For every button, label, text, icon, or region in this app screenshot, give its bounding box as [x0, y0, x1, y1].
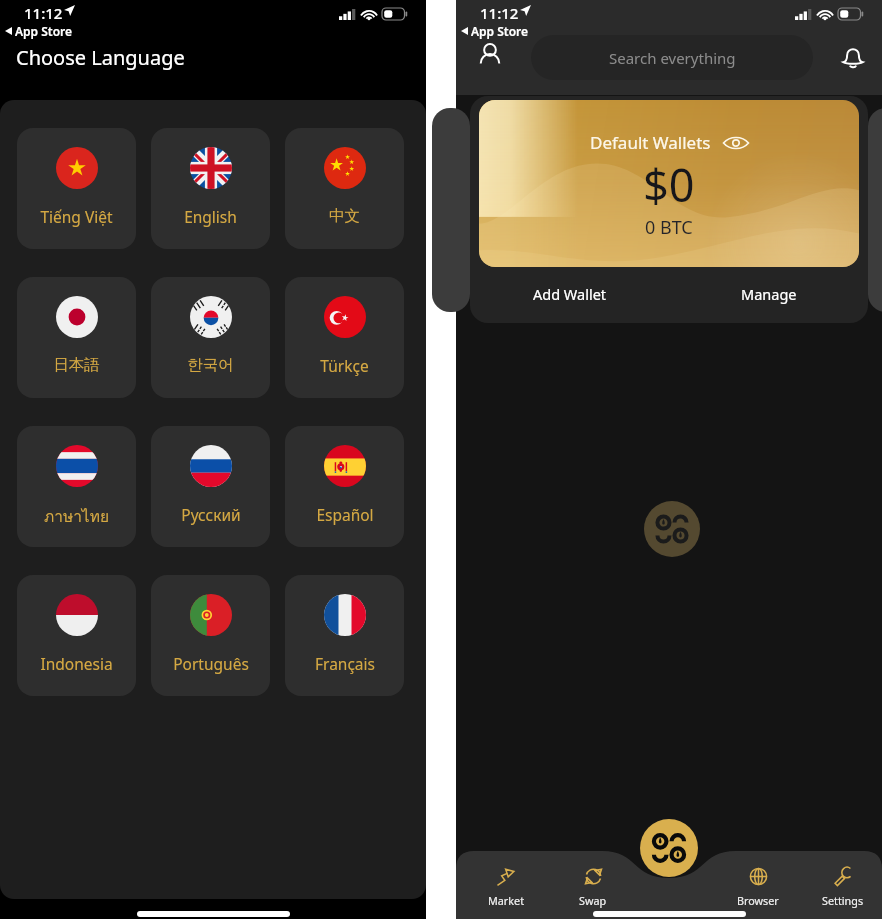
staticText: Choose Language	[16, 44, 185, 71]
staticText: Browser	[737, 893, 779, 908]
staticText: Add Wallet	[533, 284, 607, 304]
button[interactable]: Indonesia	[17, 575, 136, 696]
button[interactable]: Add Wallet	[470, 268, 669, 320]
button[interactable]: Swap	[555, 860, 631, 910]
staticText: Tiếng Việt	[40, 206, 113, 227]
staticText: Settings	[822, 893, 864, 908]
button[interactable]: Русский	[151, 426, 270, 547]
staticText: Português	[173, 653, 249, 674]
button[interactable]: Español	[285, 426, 404, 547]
staticText: Русский	[181, 504, 241, 525]
button[interactable]: Search everything	[531, 35, 813, 80]
staticText: 한국어	[187, 355, 234, 375]
staticText: ภาษาไทย	[44, 504, 109, 529]
staticText: Manage	[741, 284, 797, 304]
staticText: 11:12	[24, 3, 63, 23]
button[interactable]: Manage	[669, 268, 868, 320]
staticText: Español	[316, 504, 374, 525]
staticText: 11:12	[480, 3, 519, 23]
staticText: 日本語	[53, 355, 100, 375]
staticText: App Store	[15, 23, 73, 39]
button[interactable]: 한국어	[151, 277, 270, 398]
staticText: Swap	[579, 893, 607, 908]
button[interactable]: Türkçe	[285, 277, 404, 398]
staticText: Français	[315, 653, 375, 674]
staticText: Search everything	[609, 48, 736, 68]
staticText: 0 BTC	[645, 215, 693, 240]
staticText: Indonesia	[40, 653, 113, 674]
button[interactable]: Português	[151, 575, 270, 696]
button[interactable]: English	[151, 128, 270, 249]
button[interactable]: Market	[468, 860, 544, 910]
staticText: Market	[488, 893, 525, 908]
staticText: 中文	[329, 206, 360, 226]
other: Toggle balance	[723, 135, 749, 151]
button[interactable]: Settings	[805, 860, 881, 910]
button[interactable]: ภาษาไทย	[17, 426, 136, 547]
button[interactable]: Notifications	[839, 42, 867, 70]
staticText: Default Wallets	[590, 131, 711, 154]
button[interactable]: Français	[285, 575, 404, 696]
button[interactable]: Browser	[720, 860, 796, 910]
button[interactable]: 中文	[285, 128, 404, 249]
staticText: $0	[643, 154, 695, 215]
staticText: English	[184, 206, 237, 227]
button[interactable]: 日本語	[17, 277, 136, 398]
staticText: App Store	[471, 23, 529, 39]
staticText: Türkçe	[320, 355, 369, 376]
button[interactable]: Tiếng Việt	[17, 128, 136, 249]
button[interactable]: Wallet	[640, 819, 698, 877]
button[interactable]: Profile	[475, 40, 505, 70]
